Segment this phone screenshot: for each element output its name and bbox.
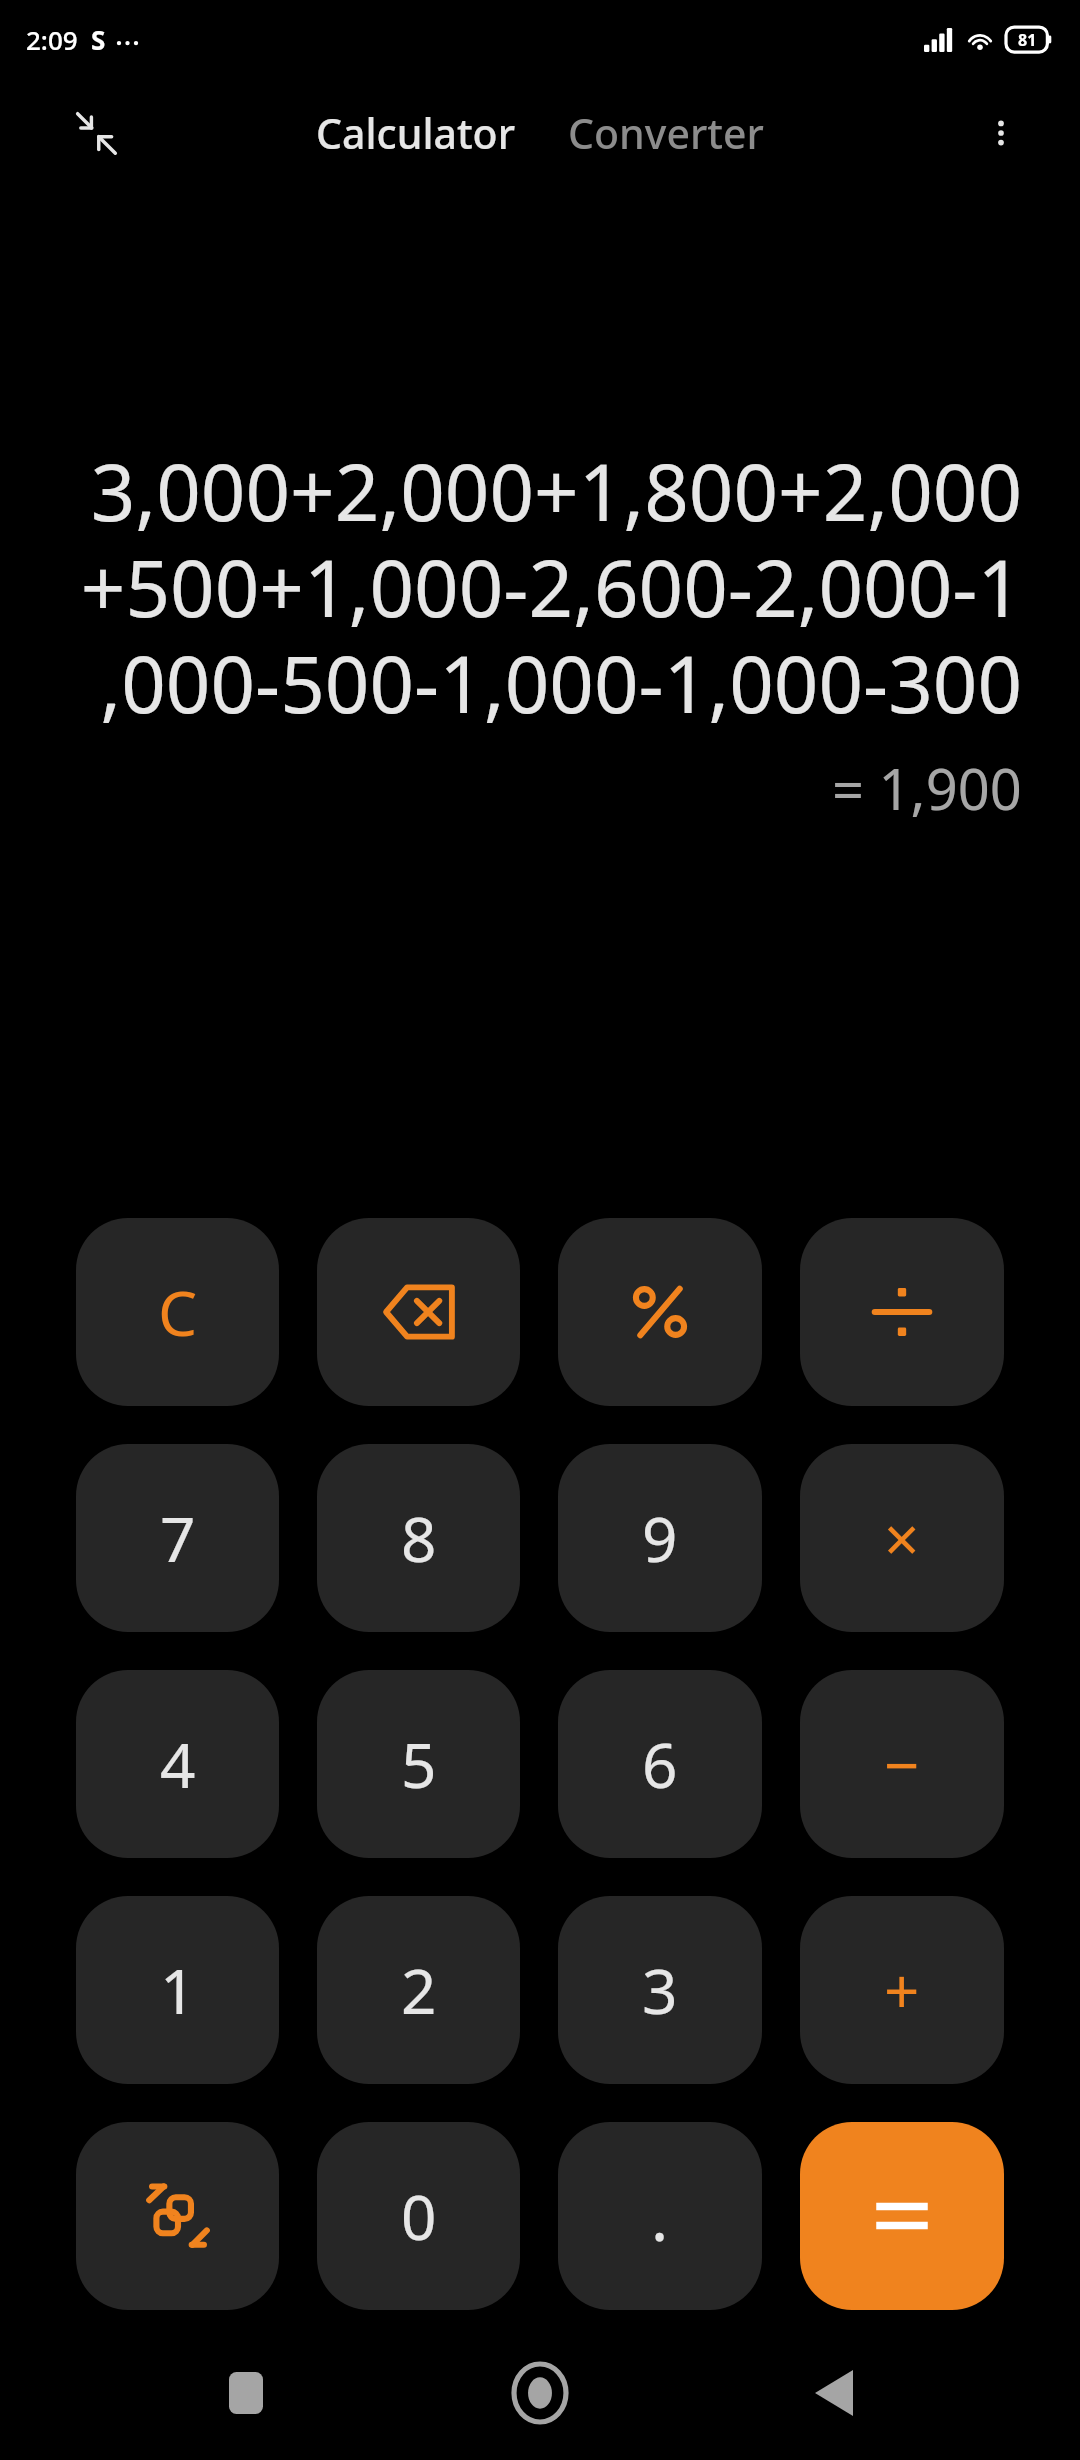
- staticText: 0: [401, 2174, 437, 2258]
- button[interactable]: Clear: [76, 1218, 279, 1406]
- staticText: +: [884, 1948, 920, 2032]
- staticText: .: [651, 2173, 669, 2260]
- button[interactable]: Swap: [76, 2122, 279, 2310]
- button[interactable]: 0: [317, 2122, 520, 2310]
- button[interactable]: Home: [492, 2350, 588, 2436]
- staticText: 6: [642, 1722, 678, 1806]
- staticText: −: [884, 1722, 920, 1806]
- button[interactable]: +: [800, 1896, 1004, 2084]
- staticText: 4: [160, 1722, 196, 1806]
- button[interactable]: [800, 2122, 1004, 2310]
- button[interactable]: Back: [786, 2350, 882, 2436]
- staticText: 3,000+2,000+1,800+2,000+500+1,000-2,600-…: [60, 438, 1022, 736]
- staticText: Calculator: [316, 105, 516, 161]
- button[interactable]: 6: [558, 1670, 762, 1858]
- staticText: 5: [401, 1722, 437, 1806]
- button[interactable]: Calculator: [306, 97, 526, 169]
- button[interactable]: 1: [76, 1896, 279, 2084]
- staticText: 81: [1018, 29, 1037, 51]
- button[interactable]: 5: [317, 1670, 520, 1858]
- staticText: 1: [160, 1948, 196, 2032]
- staticText: 9: [642, 1496, 678, 1580]
- button[interactable]: 9: [558, 1444, 762, 1632]
- staticText: S: [91, 22, 106, 57]
- staticText: Converter: [568, 105, 764, 161]
- staticText: C: [158, 1270, 198, 1354]
- button[interactable]: More options: [966, 98, 1036, 168]
- staticText: 2: [401, 1948, 437, 2032]
- staticText: 7: [160, 1496, 196, 1580]
- button[interactable]: Percent: [558, 1218, 762, 1406]
- button[interactable]: Recents: [198, 2350, 294, 2436]
- staticText: 3: [642, 1948, 678, 2032]
- staticText: = 1,900: [832, 750, 1022, 826]
- button[interactable]: Divide: [800, 1218, 1004, 1406]
- button[interactable]: 7: [76, 1444, 279, 1632]
- button[interactable]: −: [800, 1670, 1004, 1858]
- button[interactable]: 2: [317, 1896, 520, 2084]
- button[interactable]: .: [558, 2122, 762, 2310]
- button[interactable]: Collapse: [60, 97, 132, 169]
- button[interactable]: 3: [558, 1896, 762, 2084]
- button[interactable]: 8: [317, 1444, 520, 1632]
- button[interactable]: Converter: [558, 97, 774, 169]
- button[interactable]: ×: [800, 1444, 1004, 1632]
- button[interactable]: Backspace: [317, 1218, 520, 1406]
- button[interactable]: 4: [76, 1670, 279, 1858]
- staticText: 8: [401, 1496, 437, 1580]
- staticText: ×: [884, 1496, 920, 1580]
- staticText: 2:09: [26, 22, 78, 57]
